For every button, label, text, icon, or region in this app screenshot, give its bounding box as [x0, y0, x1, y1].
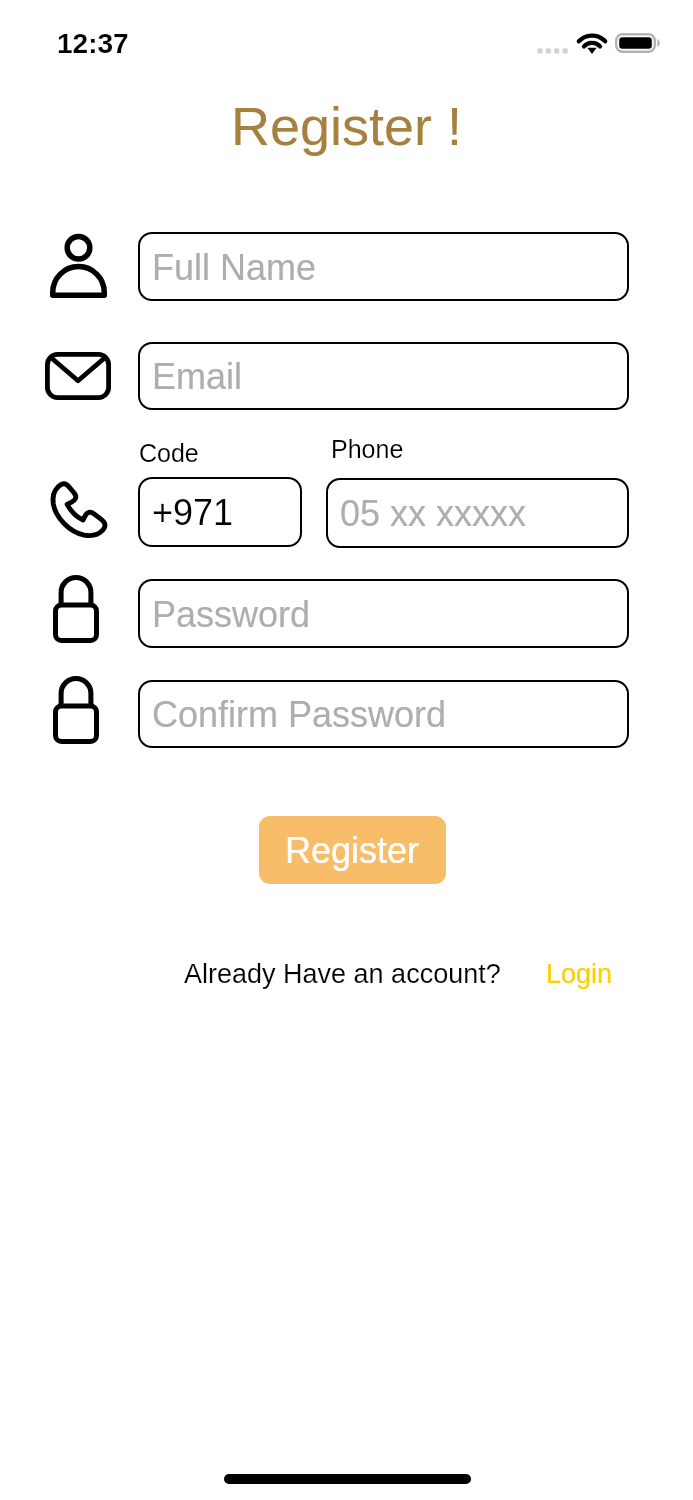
staticText: Email: [152, 356, 243, 396]
staticText: +971: [152, 492, 234, 532]
button[interactable]: Full Name: [138, 232, 629, 301]
other: Full name: [50, 228, 107, 298]
other: Password: [53, 676, 99, 744]
button[interactable]: Email: [138, 342, 629, 410]
staticText: Password: [152, 594, 311, 634]
staticText: Code: [139, 439, 199, 467]
other: Phone number: [50, 482, 107, 538]
button[interactable]: 05 xx xxxxx: [326, 478, 629, 548]
staticText: Register !: [0, 96, 693, 156]
button[interactable]: Already Have an account?: [184, 959, 501, 989]
staticText: Phone: [331, 435, 404, 463]
button[interactable]: Confirm Password: [138, 680, 629, 748]
staticText: 12:37: [57, 28, 129, 59]
staticText: 05 xx xxxxx: [340, 493, 527, 533]
other: Password: [53, 575, 99, 643]
staticText: Full Name: [152, 247, 317, 287]
button[interactable]: Password: [138, 579, 629, 648]
button[interactable]: Login: [546, 959, 613, 989]
staticText: Confirm Password: [152, 694, 447, 734]
staticText: Login: [546, 959, 613, 989]
staticText: Already Have an account?: [184, 959, 501, 989]
staticText: Register: [285, 830, 420, 870]
button[interactable]: Register: [259, 816, 446, 884]
button[interactable]: +971: [138, 477, 302, 547]
other: Email: [45, 352, 111, 400]
